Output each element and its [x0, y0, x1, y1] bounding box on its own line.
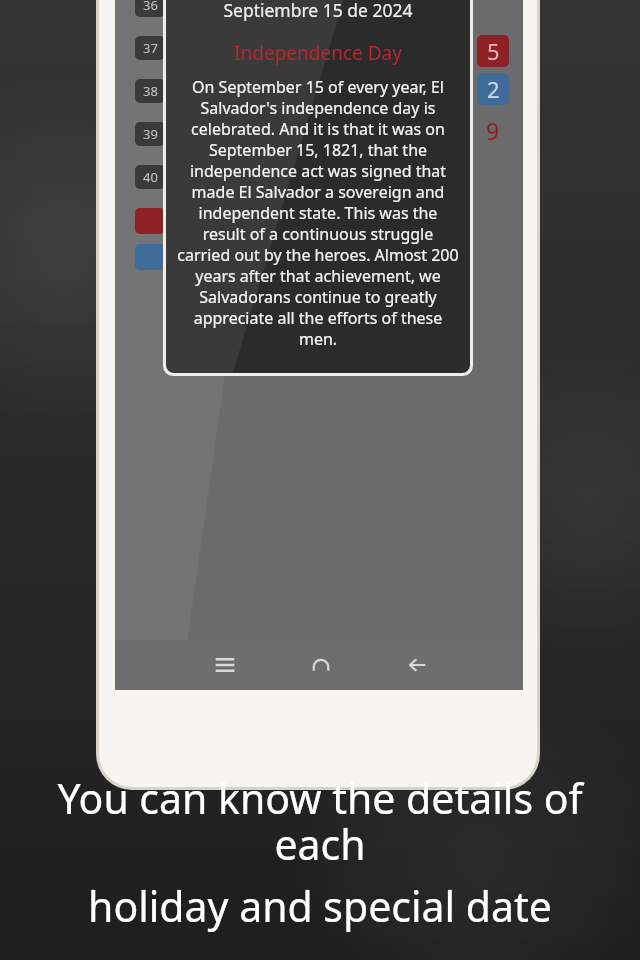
button[interactable]: 37 [135, 36, 165, 60]
staticText: 36 [143, 0, 158, 14]
button[interactable] [135, 208, 165, 234]
staticText: You can know the details of each [18, 770, 622, 872]
button[interactable]: 5 [297, 0, 341, 25]
staticText: 38 [143, 82, 158, 100]
staticText: 5 [487, 36, 500, 66]
button[interactable]: 36 [135, 0, 165, 17]
button[interactable]: 40 [135, 165, 165, 189]
staticText: 4 [268, 0, 282, 24]
button[interactable]: 2 [165, 0, 209, 25]
button[interactable]: 3 [209, 0, 253, 25]
button[interactable]: 4 [253, 0, 297, 25]
button[interactable]: Home [297, 641, 345, 689]
button[interactable]: Back [393, 641, 441, 689]
staticText: 37 [143, 39, 158, 57]
button[interactable]: 6 [341, 0, 385, 25]
button[interactable]: 38 [135, 79, 165, 103]
staticText: September 15, 2024 / Septiembre 15 de 20… [176, 0, 460, 22]
staticText: 9 [486, 115, 500, 146]
button[interactable]: Menu [201, 641, 249, 689]
staticText: 2 [487, 74, 500, 104]
staticText: 39 [143, 125, 158, 143]
staticText: 6 [356, 0, 370, 24]
staticText: 5 [312, 0, 326, 24]
button[interactable] [135, 244, 165, 270]
staticText: On September 15 of every year, El Salvad… [176, 76, 460, 350]
staticText: 3 [224, 0, 238, 24]
button[interactable]: 8 [429, 0, 473, 25]
staticText: 40 [143, 168, 158, 186]
button[interactable]: 2 [477, 73, 509, 105]
staticText: 7 [400, 0, 414, 24]
button[interactable]: 7 [385, 0, 429, 25]
button[interactable]: 39 [135, 122, 165, 146]
button[interactable]: 5 [477, 35, 509, 67]
button[interactable]: September 15, 2024 / Septiembre 15 de 20… [166, 0, 470, 373]
staticText: holiday and special date [18, 878, 622, 934]
staticText: Independence Day [176, 40, 460, 66]
